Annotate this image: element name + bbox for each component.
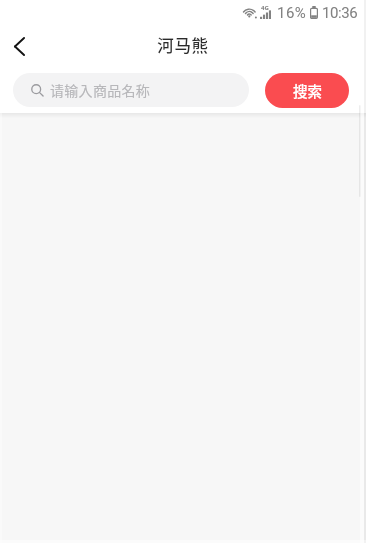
staticText: 4G	[261, 4, 269, 12]
staticText: 搜索	[293, 80, 322, 101]
staticText: 10:36	[322, 4, 358, 22]
button[interactable]: 请输入商品名称	[13, 73, 249, 107]
staticText: 16%	[277, 4, 307, 22]
staticText: 请输入商品名称	[50, 80, 151, 100]
button[interactable]: 搜索	[265, 73, 349, 108]
button[interactable]: Back	[0, 25, 44, 67]
staticText: 河马熊	[157, 33, 209, 57]
